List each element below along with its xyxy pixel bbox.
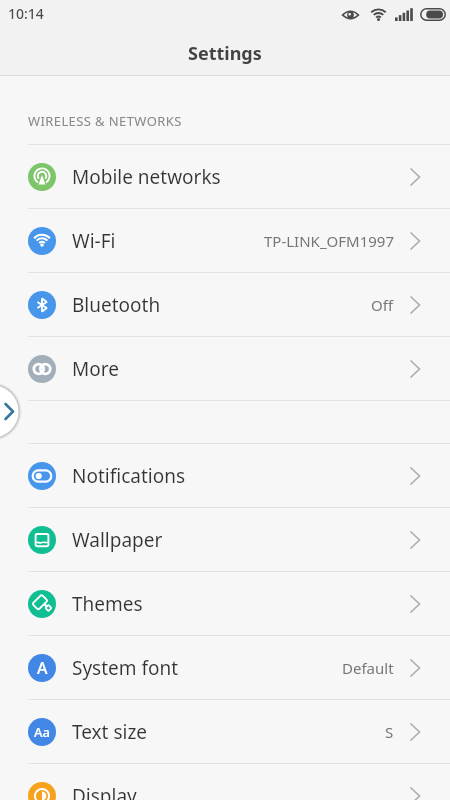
button[interactable]: Aa	[0, 700, 450, 764]
staticText: Settings	[188, 41, 262, 66]
staticText: Themes	[72, 591, 143, 617]
staticText: Text size	[72, 719, 148, 745]
button[interactable]: Mobile networks	[0, 145, 450, 209]
staticText: Wi-Fi	[72, 228, 116, 254]
staticText: Default	[342, 658, 394, 678]
staticText: A	[37, 657, 48, 679]
button[interactable]: Display	[0, 764, 450, 800]
staticText: TP-LINK_OFM1997	[264, 231, 394, 251]
button[interactable]: Wi-Fi	[0, 209, 450, 273]
staticText: Display	[72, 783, 137, 800]
staticText: WIRELESS & NETWORKS	[28, 112, 182, 130]
button[interactable]: A	[0, 636, 450, 700]
button[interactable]: Notifications	[0, 444, 450, 508]
staticText: More	[72, 356, 119, 382]
button[interactable]: More	[0, 337, 450, 401]
button[interactable]: Themes	[0, 572, 450, 636]
button[interactable]: Bluetooth	[0, 273, 450, 337]
staticText: Bluetooth	[72, 292, 161, 318]
button[interactable]	[0, 385, 19, 438]
staticText: Wallpaper	[72, 527, 163, 553]
staticText: S	[385, 722, 394, 742]
staticText: Aa	[34, 723, 50, 741]
staticText: Notifications	[72, 463, 186, 489]
staticText: Mobile networks	[72, 164, 221, 190]
staticText: System font	[72, 655, 179, 681]
staticText: Off	[371, 295, 394, 315]
staticText: 10:14	[8, 4, 44, 23]
button[interactable]: Wallpaper	[0, 508, 450, 572]
